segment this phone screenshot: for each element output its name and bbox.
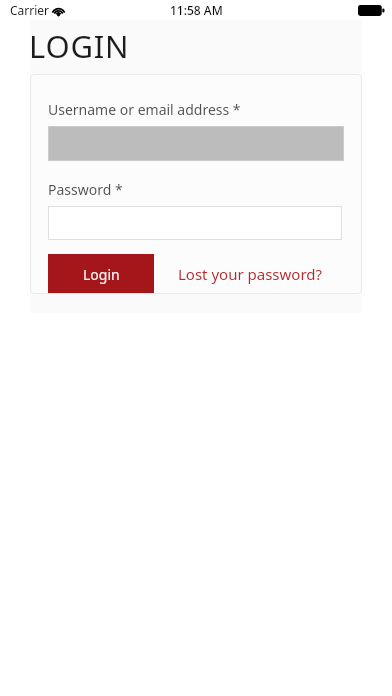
staticText: Login (83, 265, 120, 284)
staticText: Password * (48, 180, 123, 199)
staticText: LOGIN (29, 25, 130, 67)
button[interactable]: Username or email address field (48, 126, 344, 161)
staticText: 11:58 AM (170, 2, 223, 18)
button[interactable]: Lost your password? (178, 256, 323, 292)
other: Wi-Fi (52, 5, 65, 16)
staticText: Username or email address * (48, 100, 241, 119)
button[interactable]: Password field (48, 206, 342, 240)
button[interactable]: Login (48, 254, 154, 294)
staticText: Carrier (10, 2, 50, 18)
staticText: Lost your password? (178, 264, 323, 284)
other: Battery full (358, 5, 385, 16)
